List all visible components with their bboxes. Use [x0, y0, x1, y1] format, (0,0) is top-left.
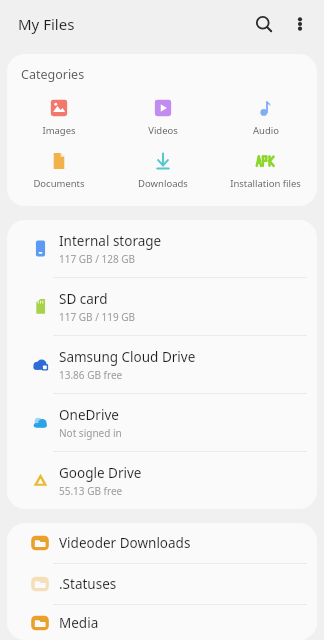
staticText: .Statuses: [59, 575, 117, 593]
button[interactable]: Google Drive: [7, 452, 317, 509]
staticText: Categories: [21, 66, 85, 83]
button[interactable]: Installation files: [214, 148, 317, 192]
button[interactable]: OneDrive: [7, 394, 317, 451]
button[interactable]: Documents: [7, 148, 111, 192]
staticText: OneDrive: [59, 406, 119, 424]
staticText: Documents: [33, 177, 85, 190]
staticText: 117 GB / 119 GB: [59, 310, 135, 324]
button[interactable]: Images: [7, 95, 111, 139]
staticText: Audio: [253, 124, 279, 137]
button[interactable]: Internal storage: [7, 220, 317, 277]
staticText: Google Drive: [59, 464, 142, 482]
staticText: Videoder Downloads: [59, 534, 191, 552]
staticText: 13.86 GB free: [59, 368, 123, 382]
button[interactable]: Videos: [111, 95, 214, 139]
button[interactable]: More options: [282, 6, 318, 42]
staticText: Media: [59, 614, 99, 632]
staticText: Videos: [148, 124, 178, 137]
staticText: Installation files: [230, 177, 301, 190]
button[interactable]: Audio: [214, 95, 317, 139]
button[interactable]: .Statuses: [7, 564, 317, 604]
staticText: My Files: [18, 14, 75, 34]
button[interactable]: Samsung Cloud Drive: [7, 336, 317, 393]
button[interactable]: Downloads: [111, 148, 214, 192]
staticText: Images: [42, 124, 76, 137]
staticText: 55.13 GB free: [59, 484, 123, 498]
button[interactable]: Videoder Downloads: [7, 523, 317, 563]
staticText: Downloads: [138, 177, 188, 190]
staticText: 117 GB / 128 GB: [59, 252, 135, 266]
button[interactable]: Search: [246, 6, 282, 42]
staticText: Not signed in: [59, 426, 122, 440]
staticText: Internal storage: [59, 232, 162, 250]
staticText: SD card: [59, 290, 108, 308]
button[interactable]: SD card: [7, 278, 317, 335]
button[interactable]: Media: [7, 605, 317, 640]
staticText: Samsung Cloud Drive: [59, 348, 196, 366]
